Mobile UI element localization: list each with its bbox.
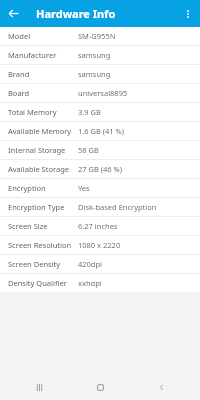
- staticText: samsung: [78, 69, 111, 79]
- staticText: Encryption Type: [8, 202, 78, 212]
- staticText: 58 GB: [78, 145, 99, 155]
- staticText: Hardware Info: [36, 6, 116, 21]
- staticText: Available Memory: [8, 126, 78, 136]
- staticText: 420dpi: [78, 259, 103, 269]
- staticText: 6.27 inches: [78, 221, 118, 231]
- staticText: universal8895: [78, 88, 128, 98]
- staticText: Brand: [8, 69, 78, 79]
- button[interactable]: Recents: [17, 374, 61, 400]
- button[interactable]: Available Storage: [0, 160, 200, 178]
- button[interactable]: Total Memory: [0, 103, 200, 121]
- button[interactable]: Internal Storage: [0, 141, 200, 159]
- staticText: xxhdpi: [78, 278, 102, 288]
- staticText: Model: [8, 31, 78, 41]
- button[interactable]: Screen Density: [0, 255, 200, 273]
- button[interactable]: More options: [176, 0, 200, 27]
- staticText: 1.6 GB (41 %): [78, 126, 125, 136]
- staticText: Screen Size: [8, 221, 78, 231]
- button[interactable]: Back: [0, 0, 26, 27]
- button[interactable]: Encryption Type: [0, 198, 200, 216]
- button[interactable]: Available Memory: [0, 122, 200, 140]
- button[interactable]: Encryption: [0, 179, 200, 197]
- staticText: 27 GB (46 %): [78, 164, 123, 174]
- staticText: Available Storage: [8, 164, 78, 174]
- button[interactable]: Screen Size: [0, 217, 200, 235]
- button[interactable]: Density Qualifier: [0, 274, 200, 292]
- staticText: Board: [8, 88, 78, 98]
- staticText: Density Qualifier: [8, 278, 78, 288]
- staticText: Manufacturer: [8, 50, 78, 60]
- button[interactable]: Board: [0, 84, 200, 102]
- staticText: Yes: [78, 183, 90, 193]
- staticText: SM-G955N: [78, 31, 116, 41]
- staticText: Screen Density: [8, 259, 78, 269]
- button[interactable]: Screen Resolution: [0, 236, 200, 254]
- staticText: Internal Storage: [8, 145, 78, 155]
- staticText: 3.9 GB: [78, 107, 101, 117]
- staticText: Disk-based Encryption: [78, 202, 157, 212]
- button[interactable]: Manufacturer: [0, 46, 200, 64]
- staticText: samsung: [78, 50, 111, 60]
- staticText: 1080 x 2220: [78, 240, 121, 250]
- staticText: Encryption: [8, 183, 78, 193]
- button[interactable]: Brand: [0, 65, 200, 83]
- button[interactable]: Home: [78, 374, 122, 400]
- button[interactable]: Model: [0, 27, 200, 45]
- staticText: Screen Resolution: [8, 240, 78, 250]
- button[interactable]: Back: [139, 374, 183, 400]
- staticText: Total Memory: [8, 107, 78, 117]
